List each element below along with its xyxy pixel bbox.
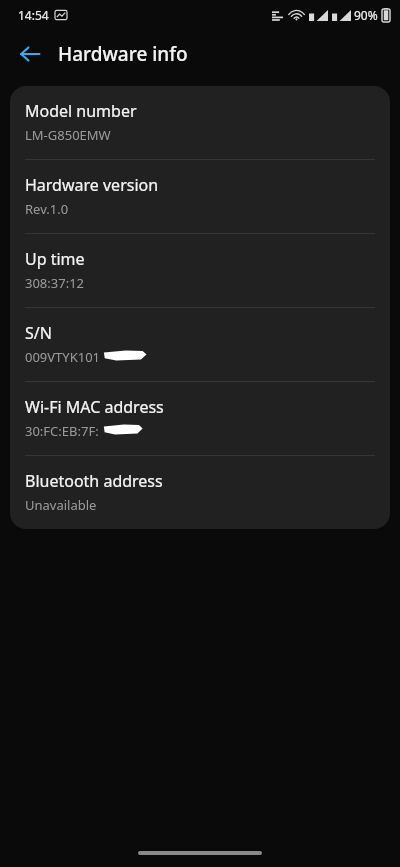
staticText: Hardware version (25, 174, 159, 196)
button[interactable]: Back (10, 34, 50, 74)
staticText: 308:37:12 (25, 274, 85, 292)
staticText: 009VTYK101 (25, 348, 101, 366)
button[interactable]: S/N (10, 308, 390, 381)
button[interactable]: Up time (10, 234, 390, 307)
staticText: LM-G850EMW (25, 126, 111, 144)
staticText: Unavailable (25, 496, 97, 514)
staticText: Up time (25, 248, 85, 270)
staticText: S/N (25, 322, 52, 344)
staticText: 14:54 (18, 7, 49, 23)
button[interactable]: Model number (10, 86, 390, 159)
staticText: 90% (354, 7, 378, 23)
staticText: Bluetooth address (25, 470, 163, 492)
staticText: Wi-Fi MAC address (25, 396, 164, 418)
button[interactable]: Wi-Fi MAC address (10, 382, 390, 455)
staticText: Model number (25, 100, 137, 122)
staticText: Hardware info (58, 41, 188, 67)
staticText: 30:FC:EB:7F: (25, 422, 99, 440)
staticText: Rev.1.0 (25, 200, 69, 218)
button[interactable]: Hardware version (10, 160, 390, 233)
button[interactable]: Bluetooth address (10, 456, 390, 529)
